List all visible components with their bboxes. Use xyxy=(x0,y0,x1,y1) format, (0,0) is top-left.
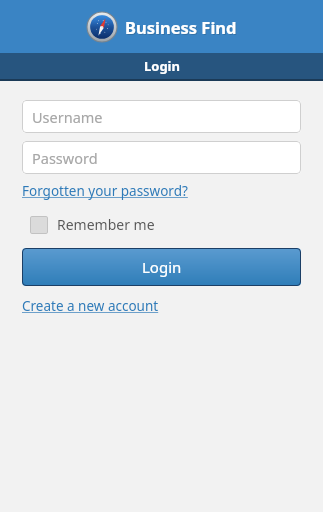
other: Business Find logo xyxy=(87,12,117,42)
button[interactable]: Password xyxy=(22,141,301,174)
staticText: Login xyxy=(144,57,180,75)
button[interactable]: Login xyxy=(22,248,301,286)
button[interactable]: Username xyxy=(22,100,301,133)
staticText: Create a new account xyxy=(22,297,159,315)
staticText: Forgotten your password? xyxy=(22,182,188,200)
button[interactable]: Login xyxy=(0,53,323,79)
staticText: Login xyxy=(142,257,182,277)
staticText: Business Find xyxy=(125,16,237,38)
button[interactable]: Forgotten your password? xyxy=(20,180,190,202)
button[interactable]: Create a new account xyxy=(20,295,161,317)
staticText: Username xyxy=(32,107,103,127)
button[interactable]: Remember me xyxy=(26,212,159,237)
staticText: Password xyxy=(32,148,98,168)
staticText: Remember me xyxy=(57,215,155,234)
staticText: Business Find xyxy=(126,17,238,39)
